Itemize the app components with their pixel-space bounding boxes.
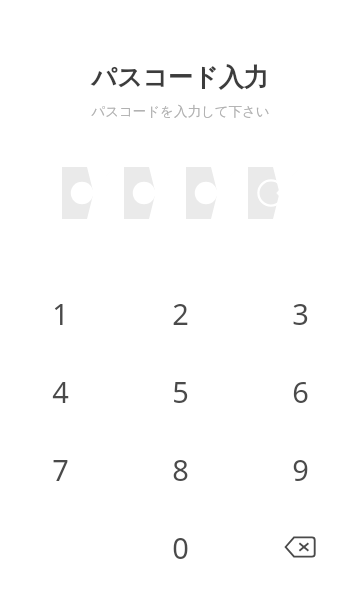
staticText: 0 [172, 528, 189, 567]
staticText: 2 [172, 294, 189, 333]
staticText: 1 [52, 294, 69, 333]
staticText: 5 [172, 372, 189, 411]
button[interactable]: 8 [120, 430, 240, 508]
staticText: 7 [52, 450, 69, 489]
staticText: 8 [172, 450, 189, 489]
button[interactable]: 9 [240, 430, 360, 508]
staticText: 6 [292, 372, 309, 411]
button[interactable]: 7 [0, 430, 120, 508]
staticText: 3 [292, 294, 309, 333]
staticText: パスコードを入力して下さい [91, 103, 270, 120]
button[interactable]: 2 [120, 274, 240, 352]
button[interactable]: 5 [120, 352, 240, 430]
staticText: パスコード入力 [91, 62, 269, 93]
button[interactable]: 0 [120, 508, 240, 586]
button[interactable]: Backspace [240, 508, 360, 586]
staticText: 4 [52, 372, 69, 411]
button[interactable]: 1 [0, 274, 120, 352]
button[interactable]: 6 [240, 352, 360, 430]
button[interactable]: 4 [0, 352, 120, 430]
button[interactable]: 3 [240, 274, 360, 352]
staticText: 9 [292, 450, 309, 489]
